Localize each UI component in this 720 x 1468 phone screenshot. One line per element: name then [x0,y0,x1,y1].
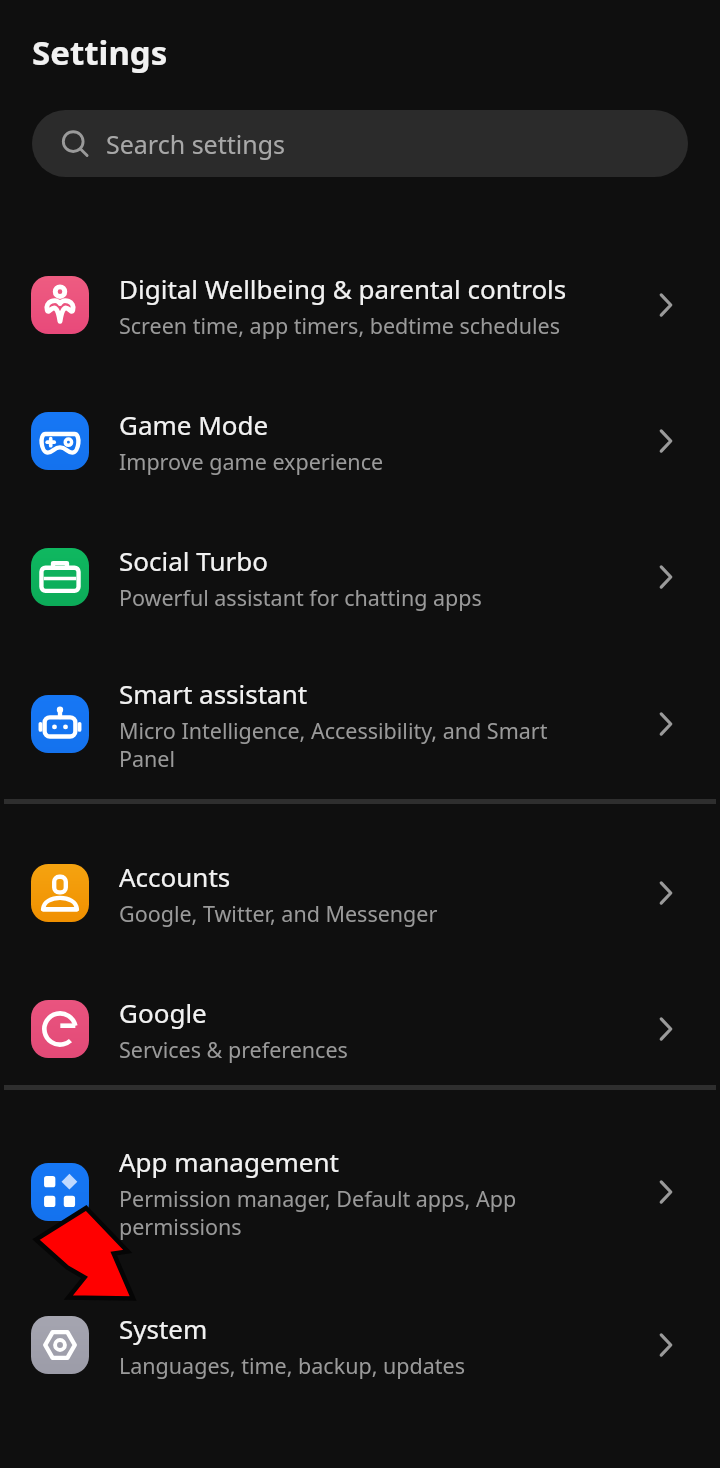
button[interactable]: Social Turbo [0,528,720,626]
staticText: Permission manager, Default apps, App pe… [119,1184,609,1241]
staticText: Digital Wellbeing & parental controls [119,271,567,306]
button[interactable]: Accounts [0,844,720,942]
button[interactable]: Smart assistant [0,664,720,784]
staticText: Accounts [119,859,231,894]
staticText: Google, Twitter, and Messenger [119,899,438,928]
button[interactable]: Search settings [32,110,688,177]
staticText: Google [119,995,207,1030]
staticText: Smart assistant [119,676,308,711]
staticText: Search settings [106,127,286,161]
button[interactable]: System [0,1296,720,1394]
staticText: Services & preferences [119,1035,348,1064]
staticText: System [119,1311,208,1346]
staticText: Languages, time, backup, updates [119,1351,466,1380]
staticText: App management [119,1144,339,1179]
staticText: Settings [32,30,168,75]
button[interactable]: App management [0,1132,720,1252]
staticText: Screen time, app timers, bedtime schedul… [119,311,560,340]
staticText: Game Mode [119,407,269,442]
button[interactable]: Game Mode [0,392,720,490]
staticText: Improve game experience [119,447,384,476]
button[interactable]: Digital Wellbeing & parental controls [0,256,720,354]
staticText: Social Turbo [119,543,268,578]
button[interactable]: Google [0,980,720,1078]
staticText: Powerful assistant for chatting apps [119,583,482,612]
staticText: Micro Intelligence, Accessibility, and S… [119,716,609,773]
